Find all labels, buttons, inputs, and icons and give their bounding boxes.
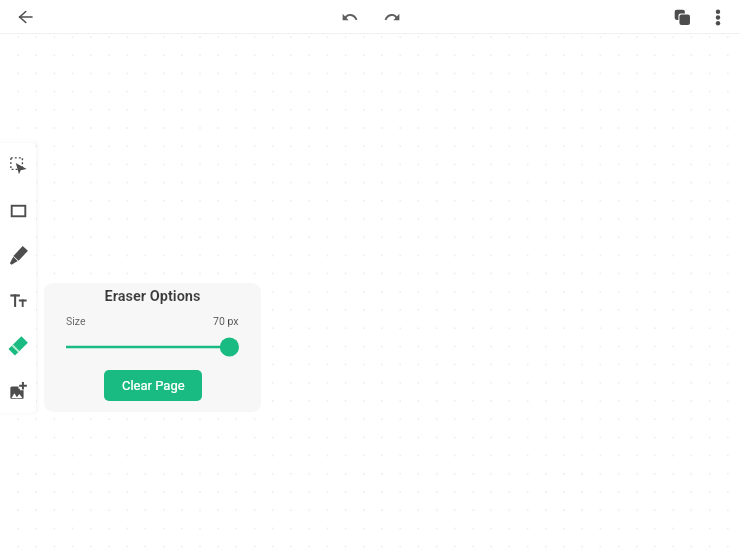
button[interactable]: Layers [668, 3, 696, 31]
staticText: Size [66, 315, 86, 327]
button[interactable]: Redo [378, 3, 406, 31]
button[interactable]: Add image [0, 368, 36, 413]
button[interactable]: Eraser [0, 323, 36, 368]
button[interactable]: Back [11, 3, 39, 31]
button[interactable]: Rectangle [0, 188, 36, 233]
staticText: 70 px [213, 315, 239, 327]
button[interactable]: Select [0, 143, 36, 188]
button[interactable]: Pen [0, 233, 36, 278]
button[interactable]: Clear Page [104, 370, 202, 401]
button[interactable]: More options [704, 3, 732, 31]
staticText: Clear Page [122, 378, 185, 393]
button[interactable]: Text [0, 278, 36, 323]
button[interactable] [66, 337, 239, 357]
staticText: Eraser Options [66, 288, 239, 305]
button[interactable]: Undo [335, 3, 363, 31]
